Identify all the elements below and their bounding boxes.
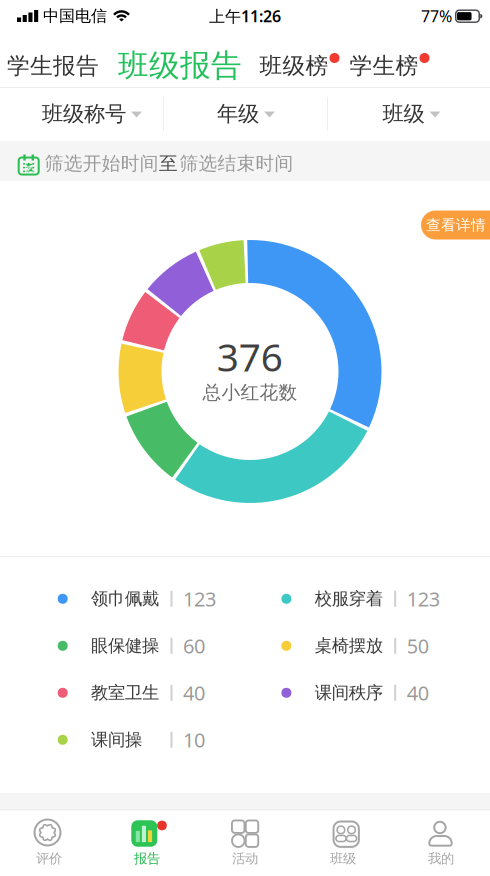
staticText: 学生榜 bbox=[349, 52, 418, 80]
staticText: 桌椅摆放 bbox=[315, 635, 383, 656]
staticText: 评价 bbox=[36, 850, 62, 867]
staticText: 课间秩序 bbox=[315, 682, 383, 703]
button[interactable]: 报告 bbox=[98, 810, 196, 876]
staticText: 中国电信 bbox=[43, 6, 107, 26]
button[interactable]: 班级榜 bbox=[259, 52, 328, 80]
staticText: 筛选开始时间 bbox=[45, 152, 159, 175]
staticText: 376 bbox=[217, 331, 283, 382]
staticText: 班级 bbox=[330, 850, 356, 867]
button[interactable]: 年级 bbox=[217, 101, 275, 127]
staticText: 总小红花数 bbox=[202, 381, 297, 404]
staticText: 班级称号 bbox=[42, 101, 126, 127]
button[interactable]: 我的 bbox=[392, 810, 490, 876]
staticText: 123 bbox=[183, 585, 216, 612]
staticText: 我的 bbox=[428, 850, 454, 867]
staticText: 班级榜 bbox=[259, 52, 328, 80]
staticText: 活动 bbox=[232, 850, 258, 867]
button[interactable]: 筛选结束时间 bbox=[179, 152, 293, 175]
button[interactable]: 学生榜 bbox=[349, 52, 418, 80]
staticText: 教室卫生 bbox=[91, 682, 159, 703]
staticText: 上午11:26 bbox=[209, 5, 281, 27]
staticText: 班级 bbox=[382, 101, 424, 127]
staticText: 报告 bbox=[134, 850, 160, 867]
button[interactable]: 评价 bbox=[0, 810, 98, 876]
staticText: 10 bbox=[183, 726, 205, 753]
staticText: 眼保健操 bbox=[91, 635, 159, 656]
staticText: 123 bbox=[407, 585, 440, 612]
button[interactable]: 班级 bbox=[382, 101, 440, 127]
staticText: 筛选结束时间 bbox=[179, 152, 293, 175]
staticText: 至 bbox=[159, 152, 178, 175]
staticText: 学生报告 bbox=[7, 52, 99, 80]
button[interactable]: 查看详情 bbox=[421, 210, 490, 239]
staticText: 77% bbox=[421, 5, 452, 27]
staticText: 40 bbox=[407, 679, 429, 706]
button[interactable]: 班级报告 bbox=[118, 47, 242, 84]
staticText: 40 bbox=[183, 679, 205, 706]
button[interactable]: 筛选开始时间 bbox=[45, 152, 159, 175]
staticText: 领巾佩戴 bbox=[91, 588, 159, 609]
staticText: 查看详情 bbox=[426, 216, 486, 234]
staticText: 60 bbox=[183, 632, 205, 659]
staticText: 课间操 bbox=[91, 729, 142, 750]
staticText: 50 bbox=[407, 632, 429, 659]
staticText: 班级报告 bbox=[118, 47, 242, 84]
staticText: 校服穿着 bbox=[315, 588, 383, 609]
button[interactable]: 学生报告 bbox=[7, 52, 99, 80]
button[interactable]: 班级 bbox=[294, 810, 392, 876]
staticText: 年级 bbox=[217, 101, 259, 127]
button[interactable]: 活动 bbox=[196, 810, 294, 876]
button[interactable]: 班级称号 bbox=[42, 101, 142, 127]
